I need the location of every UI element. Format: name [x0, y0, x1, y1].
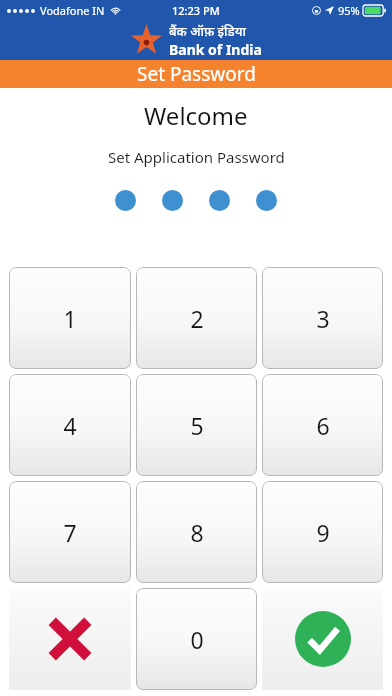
staticText: 0: [190, 624, 204, 655]
button[interactable]: 4: [9, 374, 131, 476]
staticText: 4: [63, 410, 77, 441]
button[interactable]: 3: [262, 267, 383, 369]
staticText: 2: [190, 303, 204, 334]
staticText: 9: [316, 517, 330, 548]
staticText: 1: [63, 303, 77, 334]
button[interactable]: 5: [136, 374, 257, 476]
button[interactable]: 7: [9, 481, 131, 583]
button[interactable]: 8: [136, 481, 257, 583]
button[interactable]: Clear: [9, 588, 131, 690]
button[interactable]: 2: [136, 267, 257, 369]
staticText: Bank of India: [169, 40, 262, 59]
staticText: 95%: [338, 3, 360, 18]
button[interactable]: 9: [262, 481, 383, 583]
staticText: 7: [63, 517, 77, 548]
button[interactable]: 0: [136, 588, 257, 690]
staticText: Set Password: [137, 61, 256, 87]
staticText: 5: [190, 410, 204, 441]
staticText: Vodafone IN: [40, 3, 105, 18]
button[interactable]: 6: [262, 374, 383, 476]
staticText: 6: [316, 410, 330, 441]
staticText: 12:23 PM: [172, 3, 220, 18]
staticText: Welcome: [144, 99, 248, 132]
staticText: Set Application Password: [108, 147, 285, 167]
staticText: बैंक ऑफ़ इंडिया: [169, 22, 246, 40]
staticText: 3: [316, 303, 330, 334]
staticText: 8: [190, 517, 204, 548]
button[interactable]: 1: [9, 267, 131, 369]
button[interactable]: Confirm: [262, 588, 383, 690]
